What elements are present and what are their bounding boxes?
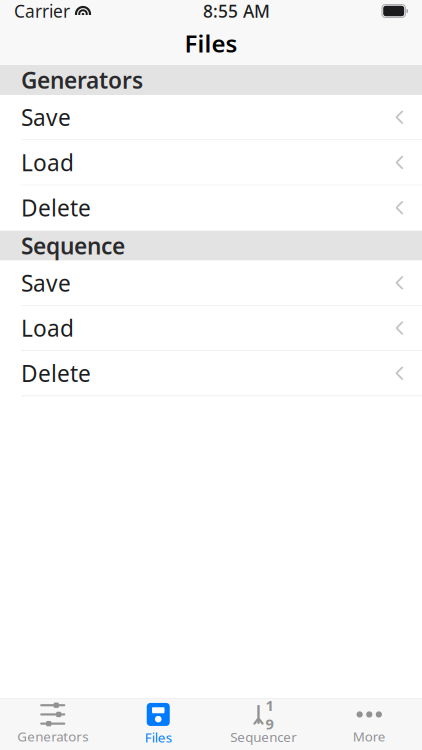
button[interactable]: Generators (0, 698, 105, 750)
button[interactable]: More (316, 698, 422, 750)
staticText: Files (145, 728, 172, 746)
staticText: 1 (265, 695, 273, 715)
button[interactable]: Load (0, 306, 422, 351)
staticText: 9 (265, 714, 273, 733)
staticText: More (353, 727, 386, 745)
button[interactable]: Save (0, 261, 422, 306)
staticText: Delete (21, 193, 91, 223)
staticText: 8:55 AM (203, 0, 270, 22)
button[interactable]: Files (105, 698, 211, 750)
button[interactable]: Delete (0, 351, 422, 396)
staticText: Save (21, 102, 71, 132)
staticText: Load (21, 147, 74, 177)
staticText: Files (184, 27, 237, 59)
staticText: Delete (21, 358, 91, 388)
staticText: Load (21, 313, 74, 343)
staticText: Save (21, 268, 71, 298)
staticText: Generators (21, 65, 143, 95)
button[interactable]: Load (0, 140, 422, 185)
staticText: Sequencer (230, 728, 297, 746)
staticText: Sequence (21, 230, 125, 261)
button[interactable]: 1 (211, 698, 316, 750)
staticText: Generators (17, 727, 88, 745)
button[interactable]: Delete (0, 185, 422, 231)
button[interactable]: Save (0, 95, 422, 140)
staticText: Carrier (14, 0, 70, 22)
